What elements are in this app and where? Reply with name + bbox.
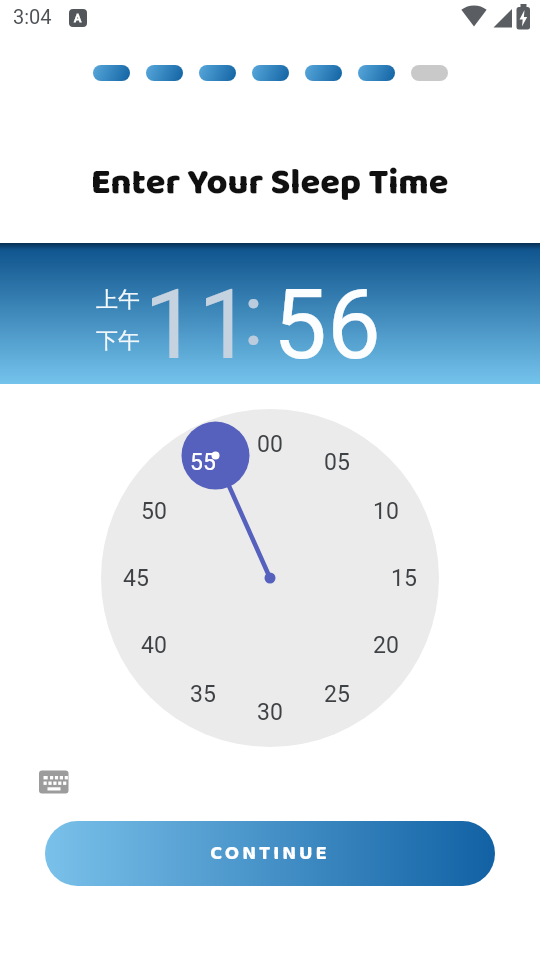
staticText: 3:04 (13, 5, 52, 28)
staticText: 00 (257, 431, 283, 458)
button[interactable]: CONTINUE (45, 821, 495, 886)
staticText: 35 (190, 681, 216, 708)
button[interactable]: 20 (363, 630, 409, 660)
button[interactable]: 10 (363, 496, 409, 526)
staticText: 下午 (96, 327, 140, 355)
button[interactable]: 00 (247, 429, 293, 459)
button[interactable]: 56 (268, 269, 386, 364)
staticText: 05 (324, 449, 350, 476)
button[interactable]: 11 (130, 269, 265, 364)
button[interactable]: 15 (381, 563, 427, 593)
button[interactable]: 上午 (90, 285, 146, 315)
staticText: 25 (324, 681, 350, 708)
staticText: Enter Your Sleep Time (91, 154, 449, 212)
button[interactable] (36, 767, 72, 797)
staticText: A (74, 12, 82, 25)
button[interactable]: 50 (131, 496, 177, 526)
button[interactable]: 45 (113, 563, 159, 593)
button[interactable]: 55 (180, 447, 226, 477)
staticText: 56 (273, 269, 381, 364)
button[interactable]: 25 (314, 679, 360, 709)
staticText: 50 (141, 498, 167, 525)
button[interactable]: 05 (314, 447, 360, 477)
button[interactable]: 35 (180, 679, 226, 709)
staticText: 30 (257, 699, 283, 726)
button[interactable]: 30 (247, 697, 293, 727)
staticText: : (243, 265, 264, 360)
staticText: 11 (144, 269, 252, 364)
staticText: 10 (373, 498, 399, 525)
staticText: 15 (391, 565, 417, 592)
staticText: CONTINUE (210, 837, 330, 870)
button[interactable]: 40 (131, 630, 177, 660)
staticText: 40 (141, 632, 167, 659)
staticText: 55 (190, 449, 216, 476)
button[interactable]: 下午 (90, 326, 146, 356)
staticText: 20 (373, 632, 399, 659)
staticText: 上午 (96, 286, 140, 314)
staticText: 45 (123, 565, 149, 592)
